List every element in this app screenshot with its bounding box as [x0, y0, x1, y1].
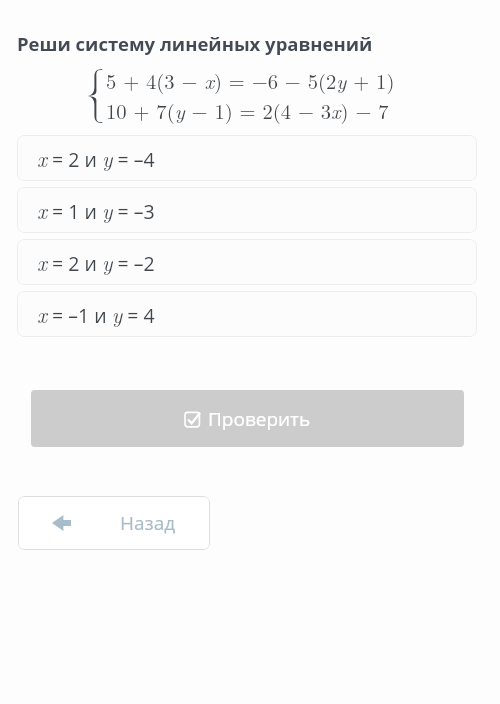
button[interactable]: x = –1 и y = 4 [17, 291, 477, 337]
button[interactable]: x = 2 и y = –4 [17, 135, 477, 181]
button[interactable]: Проверить [31, 390, 464, 447]
button[interactable]: x = 2 и y = –2 [17, 239, 477, 285]
button[interactable]: Назад [18, 496, 210, 550]
staticText: x = 1 и y = –3 [37, 195, 155, 225]
other: Назад [52, 515, 71, 531]
staticText: x = –1 и y = 4 [37, 299, 155, 329]
staticText: Назад [120, 510, 176, 536]
staticText: Реши систему линейных уравнений [17, 31, 373, 56]
staticText: 10 + 7(y − 1) = 2(4 − 3x) − 7 [106, 96, 389, 125]
staticText: Проверить [208, 406, 311, 432]
staticText: x = 2 и y = –4 [37, 143, 155, 173]
button[interactable]: x = 1 и y = –3 [17, 187, 477, 233]
staticText: 5 + 4(3 − x) = −6 − 5(2y + 1) [106, 66, 395, 95]
staticText: x = 2 и y = –2 [37, 247, 155, 277]
